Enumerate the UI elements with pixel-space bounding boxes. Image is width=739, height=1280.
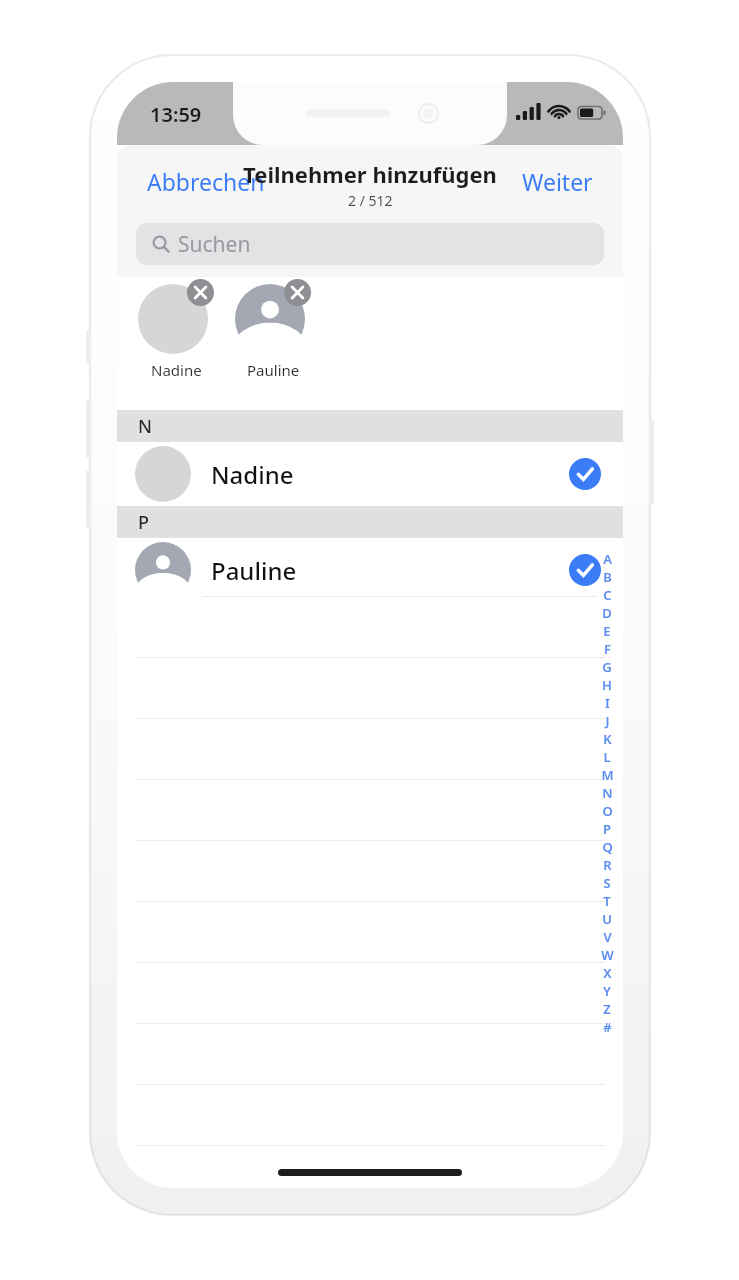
staticText: Nadine — [151, 360, 202, 380]
button[interactable]: Entfernen Nadine — [133, 279, 219, 380]
button[interactable]: Abbrechen — [143, 163, 269, 200]
staticText: W — [601, 946, 614, 964]
staticText: B — [603, 568, 612, 586]
button[interactable]: Nadine — [117, 442, 623, 506]
button[interactable]: Entfernen Nadine — [187, 279, 214, 306]
staticText: T — [603, 892, 611, 910]
staticText: Pauline — [247, 360, 300, 380]
staticText: P — [603, 820, 611, 838]
staticText: Teilnehmer hinzufügen — [243, 159, 497, 189]
staticText: O — [602, 802, 613, 820]
staticText: J — [605, 712, 610, 730]
staticText: N — [138, 414, 152, 439]
staticText: H — [602, 676, 612, 694]
button[interactable]: Pauline — [117, 538, 623, 602]
staticText: L — [603, 748, 611, 766]
staticText: Abbrechen — [147, 166, 265, 197]
staticText: X — [603, 964, 612, 982]
button[interactable]: Alphabetischer Index — [596, 550, 618, 1036]
staticText: Pauline — [211, 554, 569, 587]
staticText: 2 / 512 — [348, 191, 393, 210]
staticText: G — [602, 658, 612, 676]
button[interactable]: Entfernen Pauline — [284, 279, 311, 306]
staticText: E — [603, 622, 611, 640]
staticText: 13:59 — [150, 101, 202, 128]
staticText: Weiter — [522, 166, 593, 197]
staticText: K — [603, 730, 612, 748]
staticText: Y — [603, 982, 611, 1000]
staticText: P — [138, 510, 149, 535]
staticText: D — [602, 604, 612, 622]
staticText: I — [605, 694, 610, 712]
staticText: F — [604, 640, 611, 658]
staticText: V — [603, 928, 612, 946]
staticText: R — [603, 856, 612, 874]
staticText: N — [602, 784, 613, 802]
staticText: M — [601, 766, 614, 784]
staticText: # — [603, 1018, 612, 1036]
staticText: Suchen — [178, 230, 251, 259]
button[interactable]: Suchen — [136, 223, 604, 265]
staticText: A — [603, 550, 612, 568]
staticText: U — [602, 910, 612, 928]
staticText: C — [603, 586, 612, 604]
staticText: S — [603, 874, 611, 892]
staticText: Q — [602, 838, 613, 856]
staticText: Nadine — [211, 458, 569, 491]
button[interactable]: Weiter — [518, 163, 597, 200]
button[interactable]: Entfernen Pauline — [230, 279, 316, 380]
staticText: Z — [603, 1000, 611, 1018]
